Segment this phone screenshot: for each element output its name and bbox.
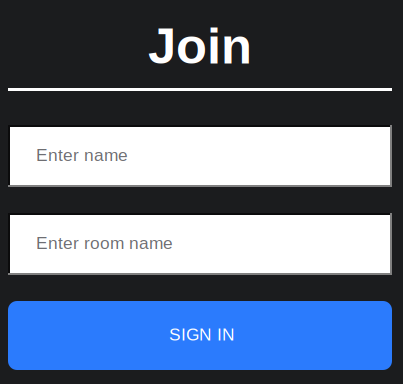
staticText: Enter name	[36, 145, 128, 165]
staticText: Join	[148, 18, 252, 74]
staticText: Enter room name	[36, 233, 173, 253]
staticText: SIGN IN	[169, 325, 235, 344]
button[interactable]: SIGN IN	[8, 301, 392, 370]
button[interactable]: Enter name	[8, 125, 392, 187]
button[interactable]: Enter room name	[8, 213, 392, 275]
